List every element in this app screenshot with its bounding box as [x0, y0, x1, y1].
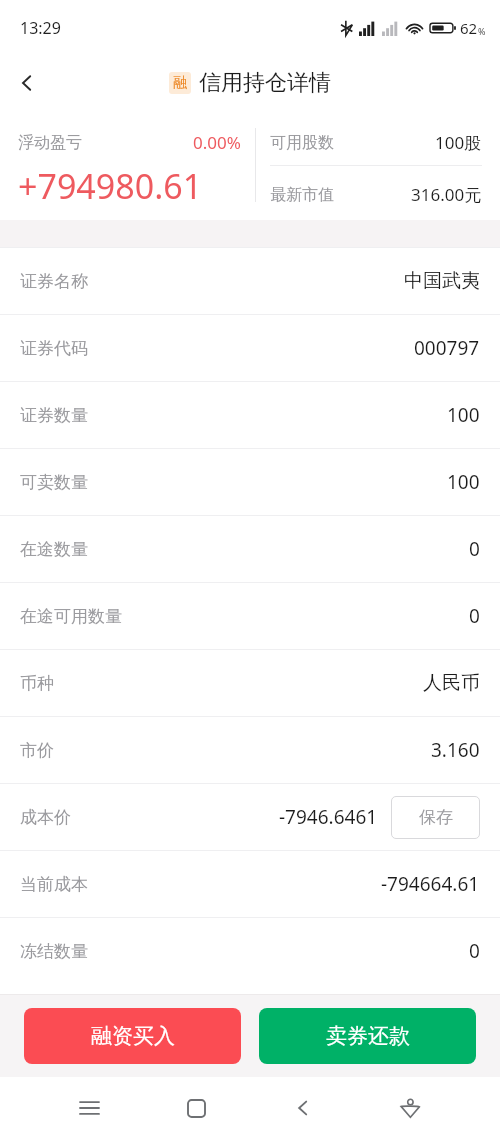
staticText: %: [478, 25, 486, 37]
staticText: 13:29: [20, 17, 61, 39]
button[interactable]: Home: [169, 1081, 223, 1135]
button[interactable]: 冻结数量: [0, 918, 500, 984]
staticText: 0: [469, 536, 480, 562]
staticText: 币种: [20, 673, 54, 694]
staticText: 证券数量: [20, 405, 88, 426]
staticText: 浮动盈亏: [18, 133, 82, 153]
staticText: 3.160: [431, 737, 480, 763]
button[interactable]: Assistant: [383, 1081, 437, 1135]
staticText: 可卖数量: [20, 472, 88, 493]
staticText: -794664.61: [381, 871, 480, 897]
staticText: 信用持仓详情: [199, 69, 331, 97]
button[interactable]: 市价: [0, 717, 500, 783]
staticText: 0: [469, 603, 480, 629]
staticText: 0.00%: [193, 131, 241, 154]
staticText: 000797: [414, 335, 480, 361]
staticText: 62: [460, 18, 478, 38]
staticText: 市价: [20, 740, 54, 761]
button[interactable]: 保存: [391, 796, 480, 839]
button[interactable]: 在途可用数量: [0, 583, 500, 649]
staticText: 冻结数量: [20, 941, 88, 962]
staticText: 100: [447, 402, 480, 428]
staticText: -7946.6461: [279, 804, 378, 830]
button[interactable]: 融资买入: [24, 1008, 241, 1064]
staticText: 当前成本: [20, 874, 88, 895]
button[interactable]: Back: [276, 1081, 330, 1135]
button[interactable]: 当前成本: [0, 851, 500, 917]
button[interactable]: 证券代码: [0, 315, 500, 381]
button[interactable]: 可卖数量: [0, 449, 500, 515]
staticText: 证券名称: [20, 271, 88, 292]
button[interactable]: Recent apps: [62, 1081, 116, 1135]
button[interactable]: 在途数量: [0, 516, 500, 582]
staticText: 融: [173, 74, 187, 92]
staticText: 中国武夷: [404, 269, 480, 293]
staticText: 成本价: [20, 807, 71, 828]
staticText: 最新市值: [270, 185, 334, 205]
staticText: 可用股数: [270, 133, 334, 153]
staticText: 证券代码: [20, 338, 88, 359]
button[interactable]: 成本价: [0, 784, 500, 850]
staticText: 316.00元: [411, 183, 482, 206]
staticText: 融资买入: [91, 1023, 175, 1049]
button[interactable]: 证券名称: [0, 248, 500, 314]
staticText: 0: [469, 938, 480, 964]
staticText: 卖券还款: [326, 1023, 410, 1049]
staticText: 人民币: [423, 671, 480, 695]
staticText: +794980.61: [18, 163, 203, 209]
staticText: 100: [447, 469, 480, 495]
staticText: 在途可用数量: [20, 606, 122, 627]
button[interactable]: 卖券还款: [259, 1008, 476, 1064]
staticText: 保存: [419, 807, 453, 828]
staticText: 在途数量: [20, 539, 88, 560]
button[interactable]: 币种: [0, 650, 500, 716]
staticText: 100股: [435, 131, 482, 154]
button[interactable]: 证券数量: [0, 382, 500, 448]
button[interactable]: Back: [0, 56, 54, 110]
